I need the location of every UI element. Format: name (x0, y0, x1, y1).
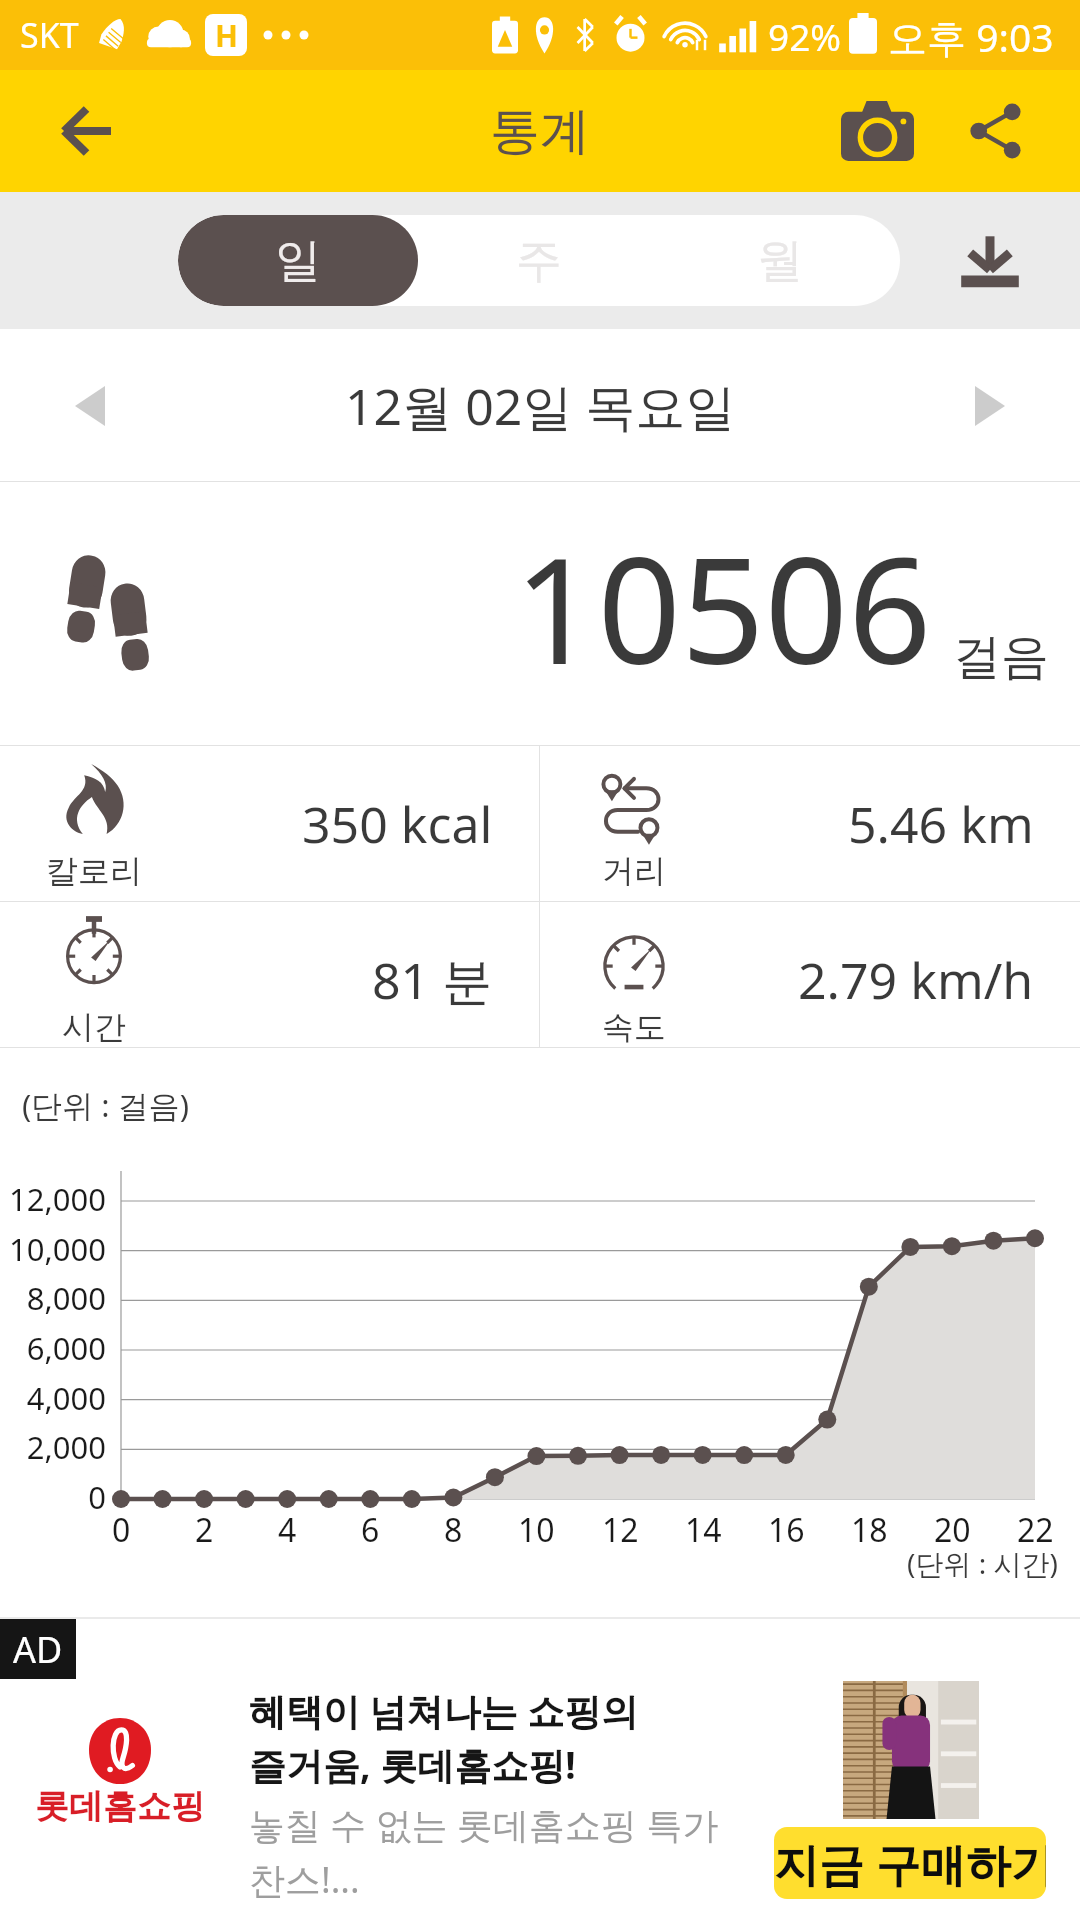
staticText: 2,000 (26, 1426, 106, 1468)
button[interactable]: Download (940, 215, 1040, 306)
staticText: SKT (20, 12, 79, 58)
staticText: 놓칠 수 없는 롯데홈쇼핑 특가 찬스!... (249, 1800, 719, 1904)
staticText: 20 (934, 1508, 971, 1552)
staticText: 4,000 (26, 1377, 106, 1419)
staticText: 주 (516, 232, 562, 290)
staticText: 12 (602, 1508, 639, 1552)
staticText: 8 (444, 1508, 463, 1552)
staticText: 5.46 km (848, 790, 1034, 858)
staticText: (단위 : 걸음) (22, 1084, 190, 1126)
staticText: 2 (195, 1508, 214, 1552)
staticText: 오후 9:03 (888, 10, 1054, 63)
button[interactable]: 칼로리 (0, 746, 539, 901)
button[interactable]: Share (937, 70, 1054, 192)
staticText: 혜택이 넘쳐나는 쇼핑의 즐거움, 롯데홈쇼핑! (249, 1685, 639, 1790)
button[interactable]: 속도 (540, 902, 1080, 1047)
staticText: 걸음 (953, 627, 1049, 687)
staticText: (단위 : 시간) (907, 1544, 1058, 1582)
staticText: 350 kcal (302, 790, 493, 858)
staticText: 0 (112, 1508, 131, 1552)
staticText: 속도 (602, 1007, 666, 1047)
button[interactable]: Previous day (50, 366, 130, 446)
button[interactable]: 거리 (540, 746, 1080, 901)
button[interactable]: 월 (659, 215, 900, 306)
staticText: 10,000 (9, 1228, 106, 1270)
staticText: 0 (88, 1476, 106, 1518)
staticText: 12월 02일 목요일 (345, 372, 736, 440)
staticText: 롯데홈쇼핑 (35, 1785, 205, 1828)
staticText: 시간 (62, 1007, 126, 1047)
staticText: 4 (278, 1508, 297, 1552)
staticText: 16 (768, 1508, 805, 1552)
button[interactable]: Camera (817, 70, 937, 192)
staticText: 거리 (602, 851, 666, 891)
staticText: 81 분 (372, 946, 493, 1014)
staticText: 92% (768, 11, 842, 61)
staticText: 6,000 (26, 1327, 106, 1369)
staticText: 8,000 (26, 1277, 106, 1319)
staticText: 14 (685, 1508, 722, 1552)
staticText: H (215, 15, 238, 56)
staticText: AD (13, 1625, 63, 1674)
staticText: 2.79 km/h (798, 946, 1034, 1014)
staticText: 18 (851, 1508, 888, 1552)
staticText: 통계 (490, 100, 590, 163)
staticText: 일 (275, 232, 321, 290)
button[interactable]: 주 (418, 215, 659, 306)
staticText: 지금 구매하기 (774, 1833, 1046, 1894)
staticText: 12,000 (9, 1178, 106, 1220)
staticText: 22 (1017, 1508, 1054, 1552)
staticText: 칼로리 (46, 851, 142, 891)
button[interactable]: 시간 (0, 902, 539, 1047)
staticText: 10 (518, 1508, 555, 1552)
button[interactable]: 일 (178, 215, 418, 306)
staticText: 10506 (514, 508, 932, 707)
staticText: 6 (361, 1508, 380, 1552)
button[interactable]: 지금 구매하기 (774, 1827, 1046, 1899)
button[interactable]: Next day (950, 366, 1030, 446)
button[interactable]: Back (0, 70, 170, 192)
staticText: 월 (757, 232, 803, 290)
